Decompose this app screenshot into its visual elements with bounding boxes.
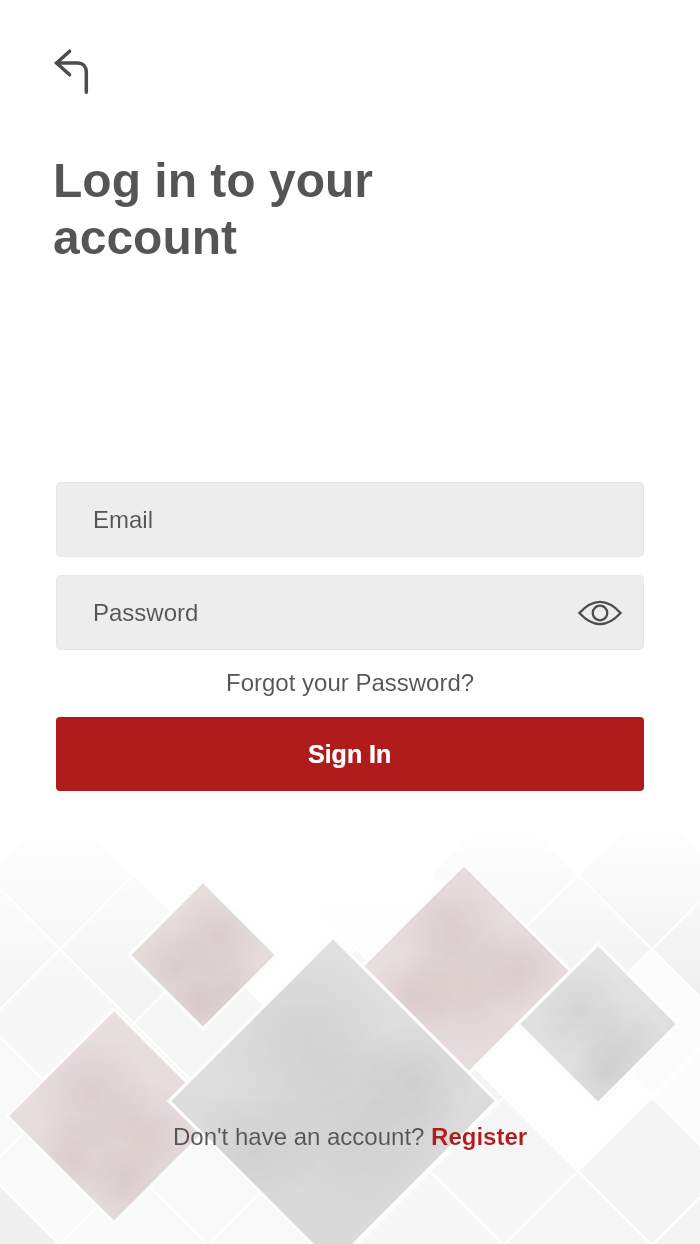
- staticText: Log in to your account: [53, 154, 373, 264]
- button[interactable]: Don't have an account? Register: [173, 1123, 528, 1150]
- button[interactable]: Back: [40, 35, 104, 99]
- button[interactable]: Password: [56, 575, 644, 650]
- button[interactable]: Show password: [574, 587, 626, 639]
- button[interactable]: Forgot your Password?: [216, 665, 485, 700]
- staticText: Sign In: [308, 740, 392, 768]
- button[interactable]: Email: [56, 482, 644, 557]
- staticText: Password: [93, 599, 199, 626]
- button[interactable]: Sign In: [56, 717, 644, 791]
- staticText: Email: [93, 506, 154, 533]
